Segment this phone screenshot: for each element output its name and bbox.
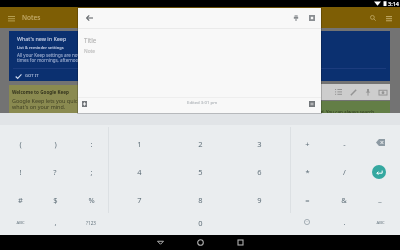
staticText: 4 (137, 167, 142, 177)
button[interactable]: ABC (366, 216, 394, 230)
staticText: ) (54, 139, 57, 149)
staticText: 2 (198, 139, 203, 149)
button[interactable]: GOT IT (15, 71, 39, 81)
staticText: * (305, 167, 310, 177)
button[interactable]: Switch list view (382, 11, 396, 25)
staticText: nd. You can always search (318, 109, 374, 115)
staticText: Notes (22, 13, 41, 22)
button[interactable]: ) (41, 137, 69, 151)
button[interactable]: 9 (245, 193, 273, 207)
button[interactable]: ?123 (77, 216, 105, 230)
button[interactable]: 7 (125, 193, 153, 207)
button[interactable]: Enter (372, 165, 386, 179)
button[interactable]: & (330, 193, 358, 207)
staticText: # (18, 195, 23, 205)
button[interactable]: ( (6, 137, 34, 151)
staticText: Welcome to Google Keep (12, 89, 69, 95)
staticText: 8 (198, 195, 203, 205)
staticText: ?123 (86, 220, 96, 226)
staticText: . (343, 217, 346, 227)
staticText: ? (53, 167, 57, 177)
staticText: 7 (137, 195, 142, 205)
staticText: What's new in Keep (17, 35, 67, 42)
staticText: = (305, 195, 310, 205)
staticText: ; (90, 167, 93, 177)
staticText: what's on your mind. (12, 103, 66, 110)
staticText: Title (84, 36, 97, 44)
button[interactable]: New photo note (375, 84, 391, 100)
staticText: 3 (257, 139, 262, 149)
staticText: 6 (257, 167, 262, 177)
button[interactable]: 3 (245, 137, 273, 151)
button[interactable]: 4 (125, 165, 153, 179)
staticText: - (343, 139, 346, 149)
staticText: / (343, 167, 346, 177)
staticText: List & reminder settings (17, 45, 64, 50)
staticText: Google Keep lets you quickly capture (12, 97, 106, 104)
staticText: : (90, 139, 93, 149)
button[interactable]: Home (189, 235, 211, 250)
button[interactable]: % (77, 193, 105, 207)
staticText: + (305, 139, 310, 149)
button[interactable]: = (293, 193, 321, 207)
staticText: ( (19, 139, 22, 149)
button[interactable]: Back (82, 10, 97, 25)
button[interactable]: _ (366, 192, 394, 206)
staticText: & (341, 195, 347, 205)
button[interactable]: ! (6, 165, 34, 179)
button[interactable]: More options (305, 97, 319, 111)
staticText: 5 (198, 167, 203, 177)
staticText: ABC (16, 220, 25, 226)
staticText: Edited 3:01 pm (187, 99, 218, 105)
button[interactable]: Emoji (300, 215, 314, 229)
button[interactable]: Archive (304, 10, 319, 25)
button[interactable]: Backspace (372, 134, 388, 150)
button[interactable]: Pin note (288, 10, 303, 25)
staticText: 1 (137, 139, 142, 149)
staticText: Note (84, 48, 95, 55)
staticText: 3:14 (388, 0, 399, 7)
button[interactable]: New voice note (360, 84, 376, 100)
button[interactable]: * (293, 165, 321, 179)
button[interactable]: 1 (125, 137, 153, 151)
button[interactable]: 6 (245, 165, 273, 179)
staticText: All your Keep settings are now available… (17, 52, 182, 58)
button[interactable]: ? (41, 165, 69, 179)
button[interactable]: 2 (186, 137, 214, 151)
button[interactable]: $ (41, 193, 69, 207)
button[interactable]: : (77, 137, 105, 151)
button[interactable]: # (6, 193, 34, 207)
button[interactable]: Open navigation drawer (4, 11, 18, 25)
button[interactable]: New drawing (345, 84, 361, 100)
button[interactable]: , (41, 215, 69, 229)
button[interactable]: 8 (186, 193, 214, 207)
button[interactable]: + (293, 137, 321, 151)
button[interactable]: ; (77, 165, 105, 179)
button[interactable]: ABC (6, 216, 34, 230)
button[interactable]: . (330, 215, 358, 229)
staticText: , (54, 217, 57, 227)
button[interactable]: / (330, 165, 358, 179)
button[interactable]: Search (366, 11, 380, 25)
staticText: times for mornings, afternoons and eveni… (17, 57, 114, 63)
staticText: $ (53, 195, 58, 205)
button[interactable]: Back (149, 235, 171, 250)
staticText: % (88, 195, 95, 205)
button[interactable]: 5 (186, 165, 214, 179)
button[interactable]: - (330, 137, 358, 151)
staticText: GOT IT (25, 73, 39, 79)
staticText: _ (378, 194, 382, 204)
staticText: 0 (198, 218, 203, 228)
button[interactable]: Recent apps (229, 235, 251, 250)
button[interactable]: Add to note (77, 97, 91, 111)
button[interactable]: New list (330, 84, 346, 100)
staticText: 9 (257, 195, 262, 205)
button[interactable]: 0 (186, 216, 214, 230)
staticText: ! (19, 167, 22, 177)
staticText: ABC (376, 220, 385, 226)
